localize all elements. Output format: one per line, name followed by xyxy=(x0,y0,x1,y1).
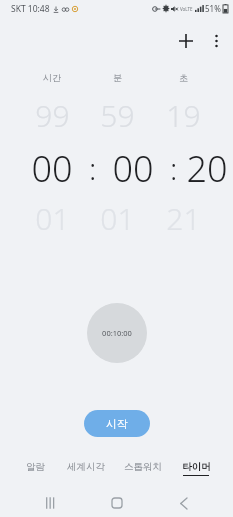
button[interactable]: 59 xyxy=(83,94,151,136)
button[interactable]: 시작 xyxy=(84,410,150,437)
staticText: SKT 10:48 xyxy=(11,3,50,15)
staticText: 19 xyxy=(166,95,201,136)
staticText: : xyxy=(170,148,178,189)
button[interactable]: 00:10:00 xyxy=(87,303,147,363)
staticText: 시작 xyxy=(106,417,128,431)
staticText: 59 xyxy=(100,95,135,136)
staticText: 스톱워치 xyxy=(124,461,162,473)
staticText: 시간 xyxy=(43,72,61,83)
staticText: 알람 xyxy=(26,461,45,473)
staticText: 21 xyxy=(166,198,201,239)
button[interactable]: 스톱워치 xyxy=(117,461,169,483)
staticText: 00 xyxy=(112,144,154,193)
button[interactable]: 01 xyxy=(83,197,151,239)
button[interactable]: 99 xyxy=(18,94,86,136)
staticText: 00 xyxy=(31,144,73,193)
button[interactable]: 00 xyxy=(99,142,167,194)
button[interactable]: 알람 xyxy=(9,461,61,483)
button[interactable]: Home xyxy=(103,489,131,517)
button[interactable]: More options xyxy=(201,26,231,56)
button[interactable]: 세계시각 xyxy=(60,461,112,483)
staticText: 초 xyxy=(179,72,188,83)
staticText: 타이머 xyxy=(182,461,211,473)
staticText: 99 xyxy=(35,95,70,136)
button[interactable]: 20 xyxy=(180,142,233,194)
staticText: 01 xyxy=(100,198,135,239)
staticText: 51% xyxy=(205,3,221,14)
staticText: : xyxy=(89,148,97,189)
staticText: 세계시각 xyxy=(67,461,105,473)
button[interactable]: Back xyxy=(169,489,197,517)
button[interactable]: 21 xyxy=(149,197,217,239)
staticText: VoLTE xyxy=(180,6,193,12)
button[interactable]: 00 xyxy=(18,142,86,194)
button[interactable]: 19 xyxy=(149,94,217,136)
button[interactable]: Recent apps xyxy=(36,489,64,517)
staticText: 분 xyxy=(113,72,122,83)
button[interactable]: Add timer preset xyxy=(171,26,201,56)
staticText: 01 xyxy=(35,198,70,239)
button[interactable]: 타이머 xyxy=(170,461,222,483)
staticText: 20 xyxy=(186,144,228,193)
staticText: 00:10:00 xyxy=(102,328,132,338)
button[interactable]: 01 xyxy=(18,197,86,239)
